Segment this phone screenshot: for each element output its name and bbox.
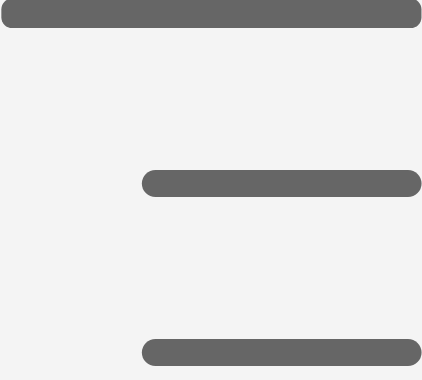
button[interactable]: Menu [1,0,421,28]
button[interactable]: Second menu line [142,170,421,197]
button[interactable]: Third menu line [142,339,421,366]
